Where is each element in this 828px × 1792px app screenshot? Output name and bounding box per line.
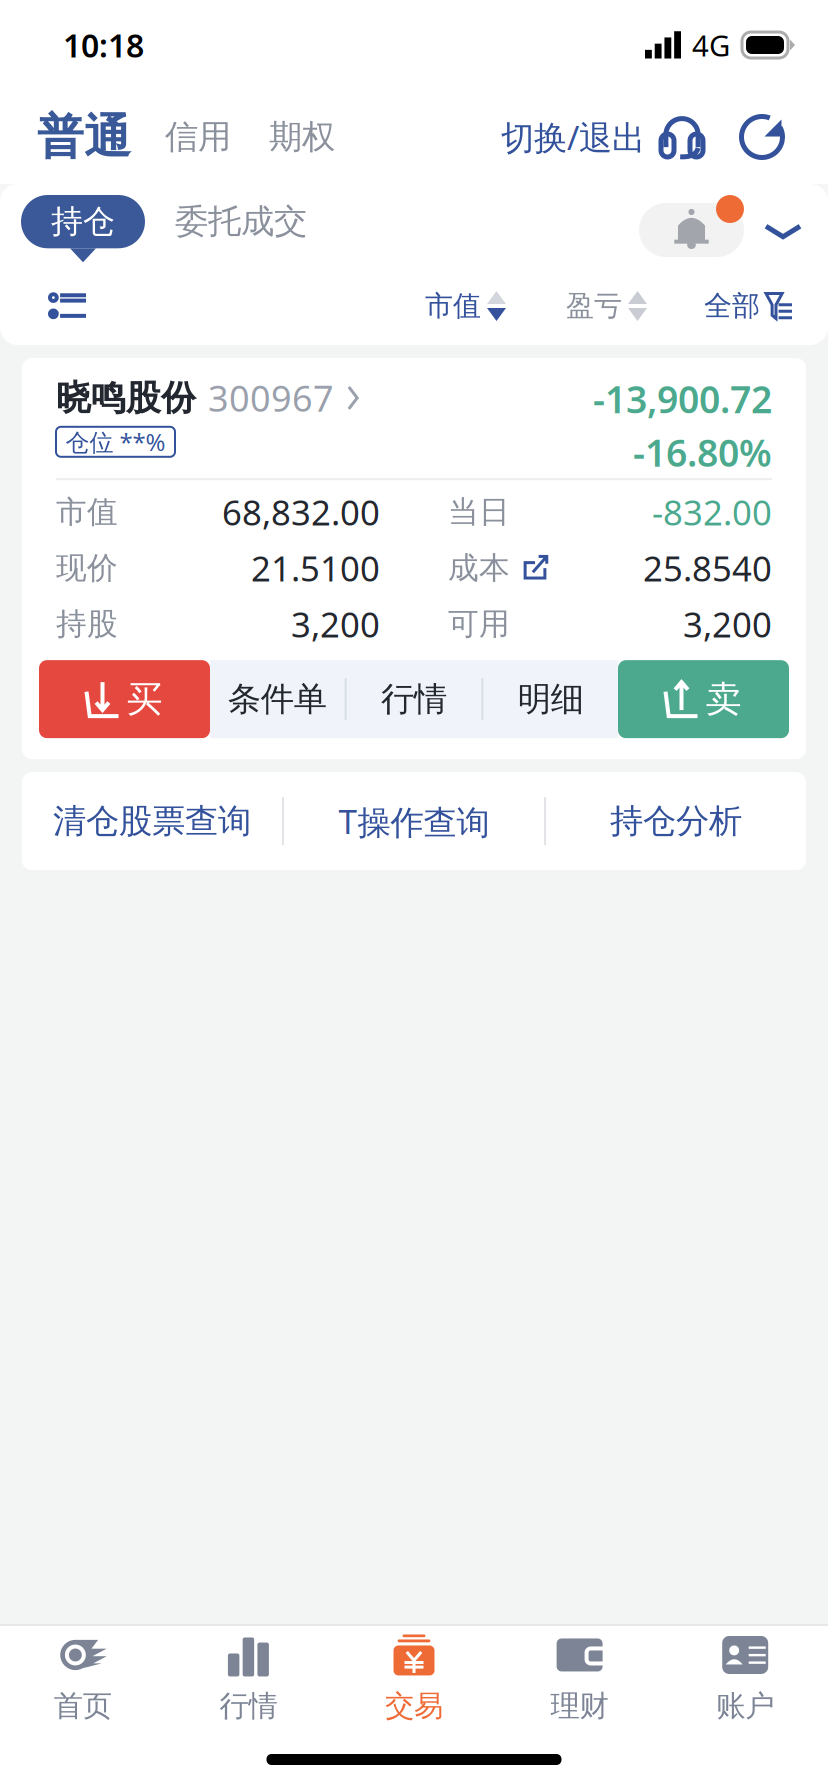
staticText: 切换/退出 (501, 115, 645, 159)
staticText: 盈亏 (566, 289, 622, 323)
button[interactable]: 全部 (704, 289, 792, 323)
staticText: 300967 (208, 374, 334, 422)
button[interactable]: 行情 (347, 660, 481, 738)
staticText: 买 (126, 677, 162, 721)
staticText: 现价 (56, 549, 118, 587)
button[interactable]: 盈亏 (566, 289, 704, 323)
staticText: 明细 (518, 679, 584, 720)
staticText: 可用 (448, 605, 510, 643)
button[interactable]: 委托成交 (175, 195, 307, 242)
staticText: 持仓 (51, 202, 115, 241)
staticText: 3,200 (683, 601, 772, 647)
staticText: 市值 (56, 493, 118, 531)
button[interactable]: 持仓 (21, 195, 145, 262)
staticText: 全部 (704, 289, 760, 323)
staticText: 4G (692, 25, 730, 64)
staticText: 持仓分析 (610, 801, 742, 842)
button[interactable]: T操作查询 (284, 772, 544, 870)
button[interactable]: 卖 (618, 660, 789, 738)
staticText: T操作查询 (338, 799, 489, 843)
staticText: 账户 (716, 1688, 774, 1724)
staticText: 68,832.00 (222, 489, 380, 535)
button[interactable]: 理财 (497, 1626, 662, 1732)
staticText: -13,900.72 (593, 374, 772, 424)
button[interactable]: 市值 (425, 289, 566, 323)
button[interactable]: 账户 (662, 1626, 828, 1732)
staticText: 持股 (56, 605, 118, 643)
staticText: 卖 (705, 677, 741, 721)
staticText: 行情 (219, 1688, 277, 1724)
button[interactable]: 信用 (165, 116, 231, 157)
staticText: 行情 (381, 679, 447, 720)
staticText: 普通 (37, 108, 131, 166)
staticText: 当日 (448, 493, 510, 531)
staticText: 市值 (425, 289, 481, 323)
button[interactable]: 买 (39, 660, 210, 738)
button[interactable]: 清仓股票查询 (22, 772, 282, 870)
button[interactable]: 通知 (639, 195, 744, 257)
button[interactable]: 晓鸣股份 (22, 358, 806, 478)
staticText: 理财 (551, 1688, 609, 1724)
staticText: 成本 (448, 549, 510, 587)
button[interactable]: 期权 (269, 116, 335, 157)
staticText: 25.8540 (643, 545, 772, 591)
button[interactable]: 列表 (42, 284, 94, 328)
staticText: 3,200 (291, 601, 380, 647)
button[interactable]: 行情 (166, 1626, 331, 1732)
staticText: -16.80% (633, 428, 772, 477)
button[interactable]: 刷新 (739, 114, 785, 160)
staticText: 21.5100 (251, 545, 380, 591)
button[interactable]: 客服 (659, 114, 705, 160)
staticText: 委托成交 (175, 201, 307, 242)
staticText: 信用 (165, 116, 231, 157)
staticText: 交易 (385, 1688, 443, 1724)
button[interactable]: 持仓分析 (546, 772, 806, 870)
button[interactable]: 明细 (483, 660, 618, 738)
button[interactable]: 首页 (0, 1626, 166, 1732)
staticText: 清仓股票查询 (53, 801, 251, 842)
button[interactable]: 切换/退出 (501, 115, 645, 159)
staticText: 仓位 **% (65, 426, 165, 458)
staticText: 期权 (269, 116, 335, 157)
staticText: -832.00 (652, 489, 772, 535)
staticText: 条件单 (228, 679, 327, 720)
staticText: 首页 (54, 1688, 112, 1724)
button[interactable]: 展开 (758, 195, 808, 248)
staticText: 晓鸣股份 (56, 377, 196, 419)
staticText: 10:18 (63, 24, 144, 66)
button[interactable]: 普通 (37, 108, 131, 166)
button[interactable]: 条件单 (210, 660, 345, 738)
button[interactable]: 交易 (331, 1626, 497, 1732)
